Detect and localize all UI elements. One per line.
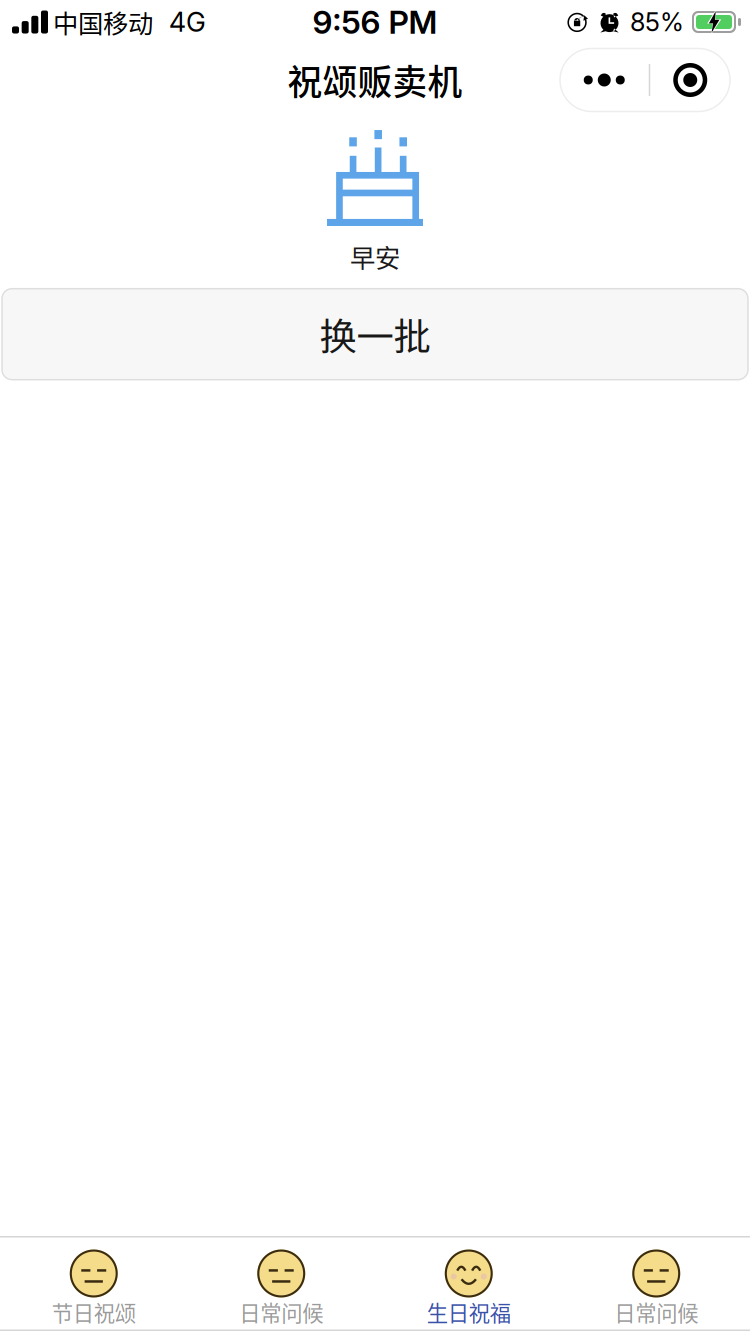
button[interactable]: 换一批 (2, 289, 748, 380)
button[interactable]: 日常问候 (562, 1237, 750, 1329)
staticText: 85% (630, 7, 684, 37)
staticText: 换一批 (319, 307, 430, 361)
button[interactable]: 日常问候 (187, 1237, 375, 1329)
button[interactable]: More options (560, 48, 649, 111)
staticText: 4G (169, 6, 206, 38)
staticText: 节日祝颂 (52, 1296, 136, 1327)
staticText: 中国移动 (53, 4, 153, 40)
staticText: 日常问候 (239, 1296, 323, 1327)
button[interactable]: 生日祝福 (375, 1237, 562, 1329)
staticText: 祝颂贩卖机 (287, 55, 462, 105)
button[interactable]: Close mini program (650, 48, 730, 111)
staticText: 生日祝福 (427, 1296, 511, 1327)
staticText: 早安 (350, 238, 400, 275)
staticText: 9:56 PM (312, 3, 437, 41)
button[interactable]: 节日祝颂 (0, 1237, 187, 1329)
staticText: 日常问候 (614, 1296, 698, 1327)
